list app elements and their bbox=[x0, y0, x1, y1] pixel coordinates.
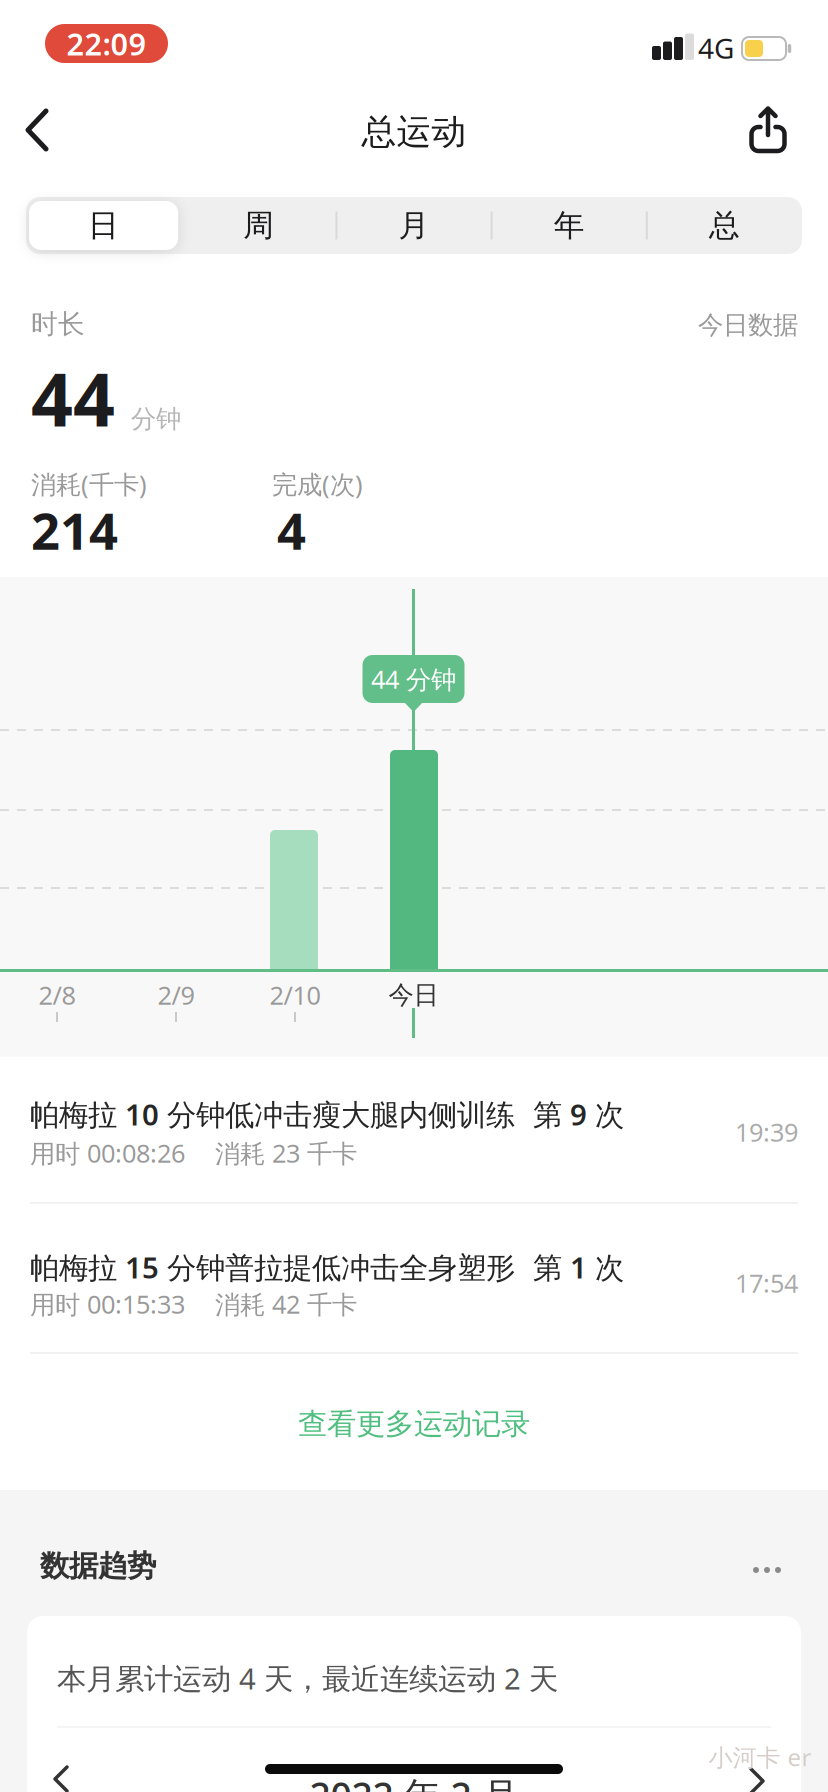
staticText: 用时 00:15:33 bbox=[30, 1287, 185, 1321]
staticText: 17:54 bbox=[735, 1266, 798, 1300]
staticText: 2022 年 2 月 bbox=[309, 1770, 518, 1792]
staticText: 总运动 bbox=[361, 111, 466, 153]
staticText: 周 bbox=[243, 207, 274, 244]
staticText: 今日 bbox=[388, 979, 438, 1010]
button[interactable]: 帕梅拉 15 分钟普拉提低冲击全身塑形 第 1 次 bbox=[0, 1224, 828, 1354]
staticText: 总 bbox=[709, 207, 740, 244]
staticText: 本月累计运动 4 天，最近连续运动 2 天 bbox=[57, 1658, 558, 1697]
staticText: 消耗 23 千卡 bbox=[215, 1136, 357, 1170]
button[interactable]: 月 bbox=[339, 201, 489, 250]
staticText: 月 bbox=[398, 207, 429, 244]
staticText: 年 bbox=[554, 207, 585, 244]
staticText: 帕梅拉 15 分钟普拉提低冲击全身塑形 第 1 次 bbox=[30, 1247, 624, 1286]
button[interactable] bbox=[737, 1550, 797, 1590]
button[interactable]: 22:09 bbox=[45, 23, 168, 64]
staticText: 22:09 bbox=[66, 23, 146, 64]
staticText: 查看更多运动记录 bbox=[298, 1406, 530, 1442]
staticText: 时长 bbox=[31, 308, 85, 340]
staticText: 分钟 bbox=[131, 404, 181, 435]
staticText: 2/8 bbox=[38, 978, 75, 1012]
button[interactable] bbox=[26, 109, 70, 153]
staticText: 19:39 bbox=[735, 1115, 798, 1149]
staticText: 日 bbox=[88, 207, 119, 244]
staticText: 4G bbox=[698, 29, 734, 67]
staticText: 消耗 42 千卡 bbox=[215, 1287, 357, 1321]
staticText: 完成(次) bbox=[272, 467, 363, 501]
staticText: 小河卡 er bbox=[708, 1741, 811, 1773]
button[interactable]: 年 bbox=[495, 201, 644, 250]
staticText: 2/10 bbox=[269, 978, 320, 1012]
staticText: 4 bbox=[277, 496, 306, 564]
staticText: 44 bbox=[31, 349, 115, 447]
button[interactable]: 总 bbox=[650, 201, 799, 250]
staticText: 帕梅拉 10 分钟低冲击瘦大腿内侧训练 第 9 次 bbox=[30, 1094, 624, 1133]
staticText: 消耗(千卡) bbox=[31, 467, 147, 501]
staticText: 用时 00:08:26 bbox=[30, 1136, 185, 1170]
staticText: 44 分钟 bbox=[371, 662, 456, 696]
button[interactable]: 周 bbox=[184, 201, 333, 250]
staticText: 2/9 bbox=[157, 978, 194, 1012]
button[interactable] bbox=[749, 1767, 779, 1792]
button[interactable] bbox=[53, 1765, 83, 1792]
button[interactable]: 帕梅拉 10 分钟低冲击瘦大腿内侧训练 第 9 次 bbox=[0, 1074, 828, 1204]
staticText: 214 bbox=[31, 496, 118, 564]
staticText: 数据趋势 bbox=[40, 1548, 156, 1584]
staticText: 今日数据 bbox=[698, 309, 798, 340]
button[interactable]: 日 bbox=[29, 201, 178, 250]
button[interactable]: 查看更多运动记录 bbox=[214, 1394, 614, 1454]
button[interactable] bbox=[743, 105, 793, 155]
